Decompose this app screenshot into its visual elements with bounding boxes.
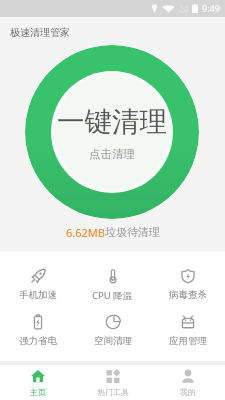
staticText: 极速清理管家 [10,26,70,39]
button[interactable]: CPU 降温 [75,266,150,304]
staticText: 空间清理 [94,335,132,347]
button[interactable]: 病毒查杀 [150,266,225,303]
button[interactable]: 热门工具 [75,365,150,400]
staticText: CPU 降温 [92,289,133,302]
staticText: 垃圾待清理 [105,225,160,239]
staticText: 点击清理 [89,147,135,161]
button[interactable]: 手机加速 [0,266,75,303]
staticText: 强力省电 [19,335,57,347]
button[interactable]: 空间清理 [75,312,150,349]
button[interactable]: 我的 [150,365,225,400]
staticText: 主页 [30,387,46,397]
button[interactable]: 应用管理 [150,312,225,349]
button[interactable]: 一键清理 [25,45,199,219]
staticText: 我的 [180,387,196,397]
staticText: 6.62MB [66,225,105,240]
staticText: 病毒查杀 [169,289,207,301]
button[interactable]: 主页 [0,365,75,400]
staticText: 9:49 [202,2,220,14]
staticText: 一键清理 [57,105,167,140]
staticText: 热门工具 [97,387,129,397]
staticText: 应用管理 [169,335,207,347]
button[interactable]: 强力省电 [0,312,75,349]
staticText: 手机加速 [19,289,57,301]
